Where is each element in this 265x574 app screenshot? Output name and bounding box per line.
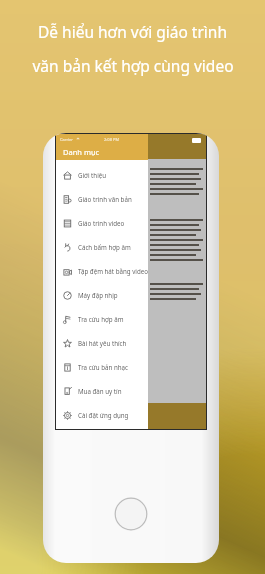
staticText: Cách bấm hợp âm <box>78 243 131 251</box>
staticText: văn bản kết hợp cùng video <box>32 55 234 76</box>
staticText: Máy đập nhịp <box>78 291 118 299</box>
button[interactable]: Tra cứu bản nhạc <box>56 355 148 379</box>
button[interactable]: Tập đệm hát bằng video <box>56 259 148 283</box>
button[interactable]: Bài hát yêu thích <box>56 331 148 355</box>
staticText: Bài hát yêu thích <box>78 339 127 347</box>
button[interactable]: Giới thiệu <box>56 163 148 187</box>
button[interactable]: Cài đặt ứng dụng <box>56 403 148 427</box>
other: Battery <box>192 138 201 143</box>
staticText: Mua đàn uy tín <box>78 387 122 395</box>
staticText: Carrier <box>60 137 74 142</box>
staticText: Giáo trình video <box>78 219 125 227</box>
staticText: Giới thiệu <box>78 171 107 179</box>
button[interactable]: Giáo trình văn bản <box>56 187 148 211</box>
button[interactable]: Giáo trình video <box>56 211 148 235</box>
button[interactable]: Cách bấm hợp âm <box>56 235 148 259</box>
staticText: Tra cứu hợp âm <box>78 315 124 323</box>
staticText: 2:08 PM <box>104 137 120 142</box>
staticText: Dễ hiểu hơn với giáo trình <box>38 21 227 42</box>
button[interactable]: Tra cứu hợp âm <box>56 307 148 331</box>
staticText: Tra cứu bản nhạc <box>78 363 129 371</box>
staticText: Danh mục <box>63 147 100 157</box>
staticText: Giáo trình văn bản <box>78 195 132 203</box>
staticText: Tập đệm hát bằng video <box>78 267 148 275</box>
button[interactable]: Máy đập nhịp <box>56 283 148 307</box>
staticText: Cài đặt ứng dụng <box>78 411 129 419</box>
button[interactable]: Mua đàn uy tín <box>56 379 148 403</box>
